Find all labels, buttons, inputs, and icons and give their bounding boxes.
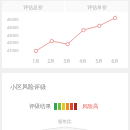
staticText: 评估总价: [23, 4, 43, 10]
staticText: 42000: [7, 40, 19, 45]
staticText: 评估单价: [87, 4, 107, 10]
staticText: 45000: [7, 17, 19, 22]
staticText: 6月: [111, 58, 119, 64]
other: Radar chart: [38, 127, 92, 130]
staticText: 41000: [7, 48, 19, 53]
staticText: 44000: [7, 25, 19, 30]
staticText: 3月: [63, 58, 71, 64]
button[interactable]: 评估单价: [65, 1, 128, 12]
staticText: 评级结果: [29, 103, 51, 110]
staticText: 4月: [79, 58, 87, 64]
staticText: 43000: [7, 33, 19, 38]
staticText: 1月: [32, 58, 40, 64]
button[interactable]: 评估总价: [2, 1, 64, 12]
button[interactable]: 评级结果: [2, 103, 128, 110]
staticText: 租售比: [58, 119, 72, 125]
staticText: 小区风险评级: [10, 83, 46, 91]
staticText: 2月: [47, 58, 55, 64]
staticText: 风险高: [82, 103, 99, 110]
staticText: 5月: [95, 58, 103, 64]
